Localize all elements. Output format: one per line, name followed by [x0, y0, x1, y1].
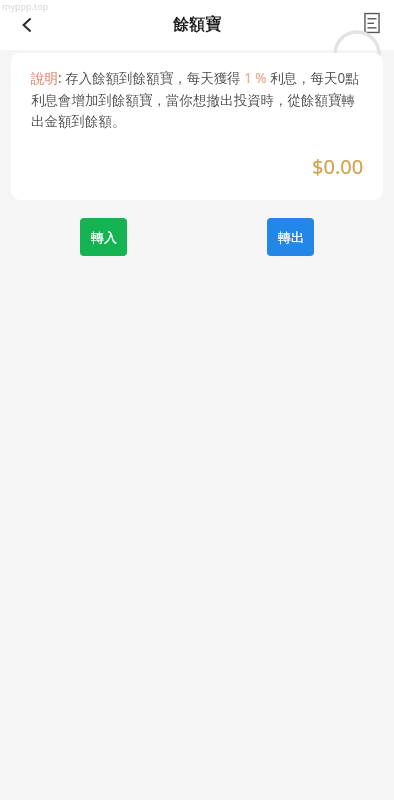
button[interactable]: 轉入: [80, 218, 127, 256]
button[interactable]: 轉出: [267, 218, 314, 256]
staticText: $0.00: [312, 153, 364, 180]
staticText: myppp.top: [2, 0, 49, 12]
staticText: 說明: 存入餘額到餘額寶，每天獲得 1 % 利息，每天0點利息會增加到餘額寶，當…: [31, 69, 364, 130]
button[interactable]: Back: [8, 6, 46, 44]
button[interactable]: Records: [356, 7, 388, 39]
staticText: 轉入: [91, 229, 117, 245]
staticText: 轉出: [278, 229, 304, 245]
staticText: 餘額寶: [173, 15, 221, 35]
